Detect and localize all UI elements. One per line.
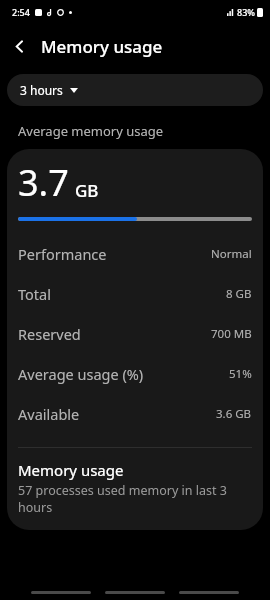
staticText: Total [18, 284, 51, 304]
button[interactable]: Average usage (%) [7, 354, 263, 394]
staticText: Reserved [18, 324, 81, 344]
staticText: 3 hours [20, 82, 63, 98]
staticText: 8 GB [226, 286, 252, 302]
staticText: 57 processes used memory in last 3 hours [18, 482, 252, 516]
staticText: 83% [237, 6, 255, 18]
button[interactable]: Performance [7, 234, 263, 274]
staticText: Available [18, 404, 80, 424]
staticText: Average memory usage [18, 122, 164, 140]
staticText: 2:54 [12, 6, 30, 18]
button[interactable]: 3 hours [7, 74, 263, 106]
button[interactable]: Total [7, 274, 263, 314]
staticText: Memory usage [18, 460, 124, 480]
button[interactable]: Reserved [7, 314, 263, 354]
staticText: 700 MB [211, 326, 252, 342]
staticText: Performance [18, 244, 107, 264]
staticText: Average usage (%) [18, 364, 144, 384]
button[interactable]: Home [105, 591, 165, 594]
staticText: Memory usage [41, 35, 163, 58]
button[interactable]: Available [7, 394, 263, 434]
staticText: 51% [229, 366, 252, 382]
button[interactable]: Back [0, 27, 38, 65]
button[interactable]: Memory usage [7, 460, 263, 516]
staticText: GB [75, 179, 99, 202]
staticText: Normal [211, 246, 252, 262]
staticText: 3.6 GB [216, 406, 252, 422]
staticText: 3.7 [18, 158, 69, 207]
button[interactable]: Back [179, 591, 239, 594]
button[interactable]: Recents [31, 591, 91, 594]
